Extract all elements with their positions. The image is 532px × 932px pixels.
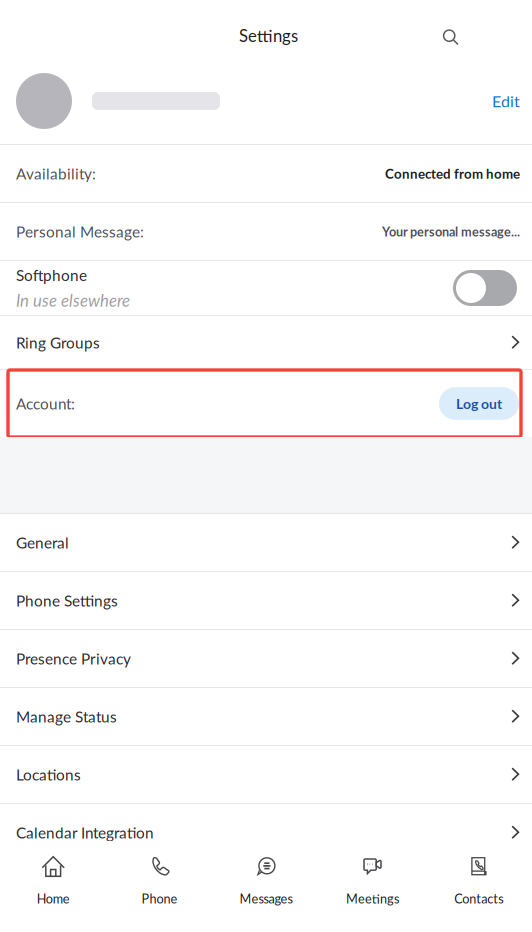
button[interactable]: Calendar Integration [0, 804, 532, 862]
staticText: General [16, 533, 69, 552]
button[interactable]: Edit [0, 58, 532, 144]
button[interactable]: Home [0, 841, 106, 932]
button[interactable]: Messages [213, 841, 319, 932]
staticText: Calendar Integration [16, 823, 154, 842]
staticText: Personal Message: [16, 222, 144, 241]
staticText: Presence Privacy [16, 649, 131, 668]
staticText: Edit [492, 91, 520, 111]
staticText: Messages [239, 891, 292, 906]
staticText: Meetings [346, 891, 399, 906]
staticText: Your personal message... [382, 224, 520, 239]
staticText: Phone [142, 891, 178, 906]
button[interactable]: Contacts [426, 841, 532, 932]
button[interactable]: Meetings [319, 841, 426, 932]
staticText: Ring Groups [16, 333, 100, 352]
button[interactable]: Phone [106, 841, 213, 932]
staticText: Home [37, 891, 70, 906]
staticText: In use elsewhere [16, 290, 130, 310]
button[interactable]: Locations [0, 746, 532, 804]
staticText: Account: [16, 394, 75, 413]
staticText: Availability: [16, 164, 96, 183]
button[interactable]: Presence Privacy [0, 630, 532, 688]
button[interactable]: General [0, 514, 532, 572]
staticText: Connected from home [385, 165, 520, 181]
button[interactable]: Ring Groups [0, 316, 532, 370]
staticText: Log out [456, 395, 502, 412]
button[interactable]: Search [432, 19, 470, 55]
staticText: Phone Settings [16, 591, 118, 610]
staticText: Softphone [16, 266, 87, 284]
button[interactable]: Log out [439, 387, 519, 420]
button[interactable]: Phone Settings [0, 572, 532, 630]
button[interactable]: Manage Status [0, 688, 532, 746]
staticText: Manage Status [16, 707, 117, 726]
staticText: Settings [239, 25, 298, 45]
staticText: Locations [16, 765, 81, 784]
staticText: Contacts [454, 891, 503, 906]
